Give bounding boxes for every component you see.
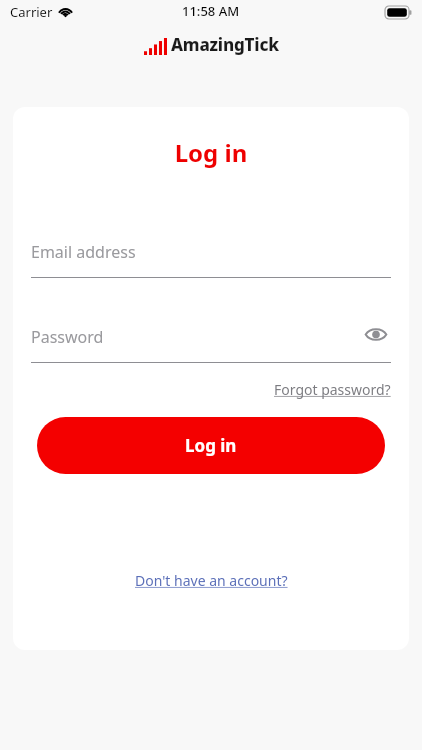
staticText: Log in — [13, 136, 409, 169]
button[interactable]: Don't have an account? — [132, 568, 291, 593]
button[interactable]: Show password — [361, 319, 391, 349]
staticText: Password — [31, 326, 104, 348]
staticText: Carrier — [10, 3, 53, 21]
staticText: Forgot password? — [274, 380, 391, 399]
button[interactable]: Email address — [31, 241, 391, 278]
staticText: Log in — [185, 434, 237, 457]
staticText: 11:58 AM — [182, 2, 240, 20]
staticText: Email address — [31, 241, 136, 263]
staticText: AmazingTick — [171, 33, 279, 56]
button[interactable]: Log in — [37, 417, 385, 474]
staticText: Don't have an account? — [135, 571, 288, 590]
button[interactable]: Password — [31, 326, 391, 362]
button[interactable]: Forgot password? — [272, 378, 393, 401]
